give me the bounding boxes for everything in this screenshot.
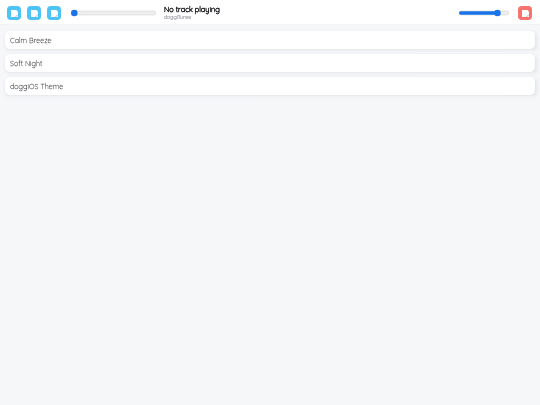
button[interactable]: doggiOS Theme [5,77,535,95]
button[interactable]: Seek position [71,5,156,20]
button[interactable]: Play [27,6,41,20]
staticText: doggiOS Theme [10,82,64,91]
button[interactable]: Volume [459,5,509,20]
button[interactable]: Soft Night [5,54,535,72]
button[interactable]: Previous track [7,6,21,20]
staticText: Calm Breeze [10,36,52,45]
staticText: No track playing [164,5,220,14]
staticText: No track playing [164,5,220,14]
staticText: No track playing [164,5,220,14]
staticText: doggiTunes [164,14,192,20]
button[interactable]: Stop [518,6,532,20]
button[interactable]: Calm Breeze [5,31,535,49]
staticText: doggiTunes [164,14,192,20]
staticText: Soft Night [10,59,43,68]
staticText: doggiTunes [164,14,192,20]
button[interactable]: Next track [47,6,61,20]
